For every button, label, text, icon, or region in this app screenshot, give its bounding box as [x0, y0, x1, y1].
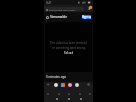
staticText: Sign up — [82, 15, 91, 19]
button[interactable]: Menu — [87, 91, 92, 96]
button[interactable]: Tabs — [77, 91, 82, 96]
button[interactable]: Recents — [79, 97, 83, 101]
staticText: 0 views — [46, 80, 55, 83]
button[interactable]: Forward — [56, 91, 61, 96]
button[interactable]: Search — [66, 91, 71, 96]
staticText: Streamable — [50, 15, 67, 19]
staticText: 9:41 — [46, 1, 52, 5]
button[interactable]: Back — [55, 97, 59, 101]
button[interactable]: Back — [46, 82, 51, 87]
button[interactable]: Reload — [64, 51, 74, 55]
button[interactable]: streamable.com/n5w3 — [45, 7, 84, 11]
button[interactable]: Back — [45, 91, 50, 96]
staticText: or something went wrong. — [52, 46, 86, 50]
button[interactable]: Home — [67, 97, 71, 101]
button[interactable]: Streamable logo — [46, 16, 49, 19]
staticText: 5 minutes ago — [46, 75, 67, 79]
button[interactable]: Sign up — [82, 15, 91, 19]
staticText: This video has been removed — [50, 41, 87, 45]
button[interactable]: Shortcut 2 — [61, 83, 65, 87]
button[interactable]: More options — [87, 6, 92, 11]
button[interactable]: Shortcut 3 — [68, 83, 72, 87]
button[interactable]: Shortcut 4 — [75, 83, 79, 87]
staticText: streamable.com/n5w3 — [49, 8, 76, 11]
staticText: Reload — [64, 51, 74, 55]
button[interactable]: Menu — [86, 82, 91, 87]
button[interactable]: Shortcut 1 — [54, 83, 58, 87]
